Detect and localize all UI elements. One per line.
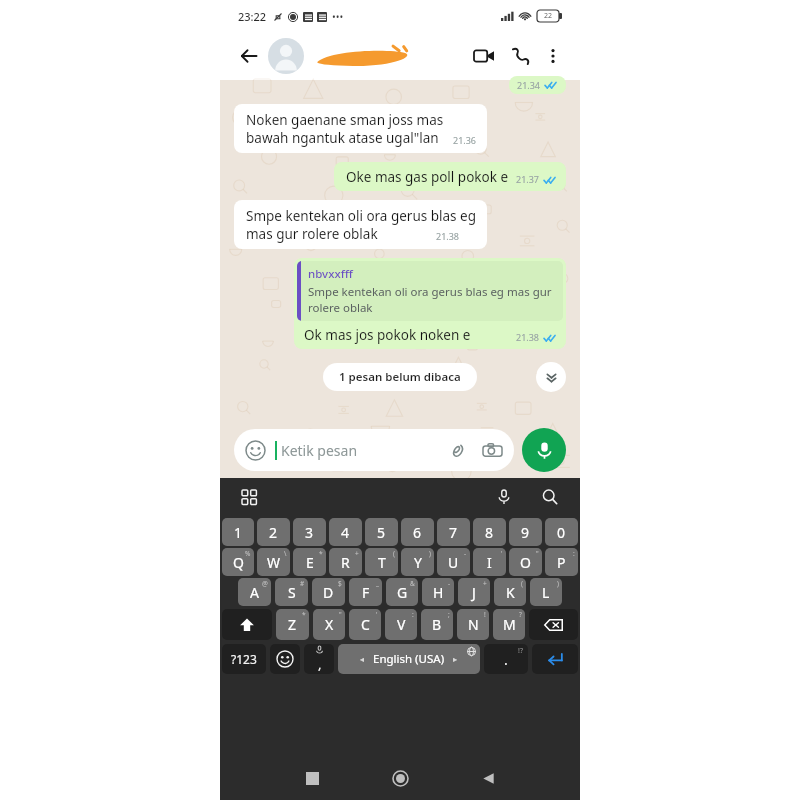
staticText: English (USA): [373, 651, 445, 667]
button[interactable]: E: [293, 548, 326, 576]
button[interactable]: N: [457, 609, 489, 640]
button[interactable]: P: [545, 548, 578, 576]
button[interactable]: V: [385, 609, 417, 640]
button[interactable]: B: [421, 609, 453, 640]
button[interactable]: Back: [466, 756, 510, 800]
staticText: @: [262, 579, 268, 588]
button[interactable]: Search: [536, 483, 564, 511]
staticText: D: [323, 583, 334, 602]
button[interactable]: C: [349, 609, 381, 640]
button[interactable]: Toolbar: [236, 484, 262, 510]
staticText: X: [325, 615, 334, 634]
staticText: (: [393, 549, 395, 558]
button[interactable]: Back: [232, 39, 266, 73]
button[interactable]: Smpe kentekan oli ora gerus blas eg: [234, 200, 487, 249]
button[interactable]: S: [275, 578, 308, 606]
button[interactable]: Emoji: [270, 644, 300, 674]
staticText: C: [361, 615, 370, 634]
button[interactable]: 0: [545, 518, 578, 546]
button[interactable]: H: [422, 578, 454, 606]
button[interactable]: T: [365, 548, 398, 576]
staticText: 21.38: [436, 230, 460, 242]
staticText: W: [267, 553, 281, 572]
button[interactable]: A: [238, 578, 271, 606]
button[interactable]: Emoji: [234, 429, 514, 471]
staticText: Smpe kentekan oli ora gerus blas eg: [246, 207, 477, 225]
staticText: ▸: [453, 655, 458, 664]
staticText: 22: [544, 11, 553, 21]
button[interactable]: Attach: [446, 439, 468, 461]
button[interactable]: ?123: [222, 644, 266, 674]
button[interactable]: 9: [509, 518, 542, 546]
button[interactable]: Oke mas gas poll pokok e: [334, 162, 566, 191]
button[interactable]: M: [493, 609, 525, 640]
button[interactable]: 3: [293, 518, 326, 546]
button[interactable]: Noken gaenane sman joss mas: [234, 104, 487, 153]
staticText: nbvxxfff: [308, 266, 353, 282]
button[interactable]: G: [386, 578, 418, 606]
staticText: bawah ngantuk atase ugal"lan: [246, 129, 439, 147]
button[interactable]: Voice input: [490, 483, 518, 511]
staticText: Y: [414, 553, 422, 572]
button[interactable]: 21.34: [509, 76, 566, 94]
button[interactable]: X: [313, 609, 345, 640]
button[interactable]: 6: [401, 518, 434, 546]
button[interactable]: .: [484, 644, 528, 674]
button[interactable]: W: [257, 548, 290, 576]
button[interactable]: Y: [401, 548, 434, 576]
staticText: S: [288, 583, 296, 602]
button[interactable]: F: [349, 578, 382, 606]
button[interactable]: More options: [538, 41, 568, 71]
staticText: ): [557, 579, 559, 588]
button[interactable]: 7: [437, 518, 470, 546]
staticText: 1: [234, 523, 243, 542]
button[interactable]: U: [437, 548, 470, 576]
button[interactable]: J: [458, 578, 490, 606]
staticText: Ok mas jos pokok noken e: [304, 326, 471, 344]
button[interactable]: K: [494, 578, 526, 606]
staticText: Noken gaenane sman joss mas: [246, 111, 444, 129]
button[interactable]: Emoji: [245, 440, 266, 461]
button[interactable]: Scroll to bottom: [536, 362, 566, 392]
button[interactable]: Recents: [290, 756, 334, 800]
button[interactable]: Z: [276, 609, 309, 640]
button[interactable]: Call: [502, 38, 538, 74]
button[interactable]: 2: [257, 518, 290, 546]
button[interactable]: R: [329, 548, 362, 576]
button[interactable]: Home: [378, 756, 422, 800]
staticText: B: [432, 615, 442, 634]
button[interactable]: L: [530, 578, 562, 606]
button[interactable]: nbvxxfff: [294, 258, 566, 349]
staticText: 3: [305, 523, 314, 542]
button[interactable]: Backspace: [529, 609, 578, 640]
button[interactable]: Video call: [466, 38, 502, 74]
button[interactable]: Q: [222, 548, 254, 576]
staticText: -: [448, 579, 451, 588]
button[interactable]: 8: [473, 518, 506, 546]
staticText: #: [300, 579, 305, 588]
staticText: *: [319, 549, 323, 558]
button[interactable]: Camera: [481, 439, 503, 461]
staticText: I: [487, 553, 492, 572]
button[interactable]: 5: [365, 518, 398, 546]
staticText: G: [397, 583, 408, 602]
staticText: N: [468, 615, 479, 634]
staticText: F: [362, 583, 370, 602]
button[interactable]: ◂: [338, 644, 480, 674]
button[interactable]: Enter: [532, 644, 578, 674]
staticText: E: [306, 553, 314, 572]
button[interactable]: D: [312, 578, 345, 606]
staticText: .: [504, 650, 508, 669]
button[interactable]: O: [509, 548, 542, 576]
button[interactable]: Shift: [222, 609, 272, 640]
button[interactable]: [268, 38, 304, 74]
button[interactable]: 1 pesan belum dibaca: [323, 363, 477, 391]
button[interactable]: 1: [222, 518, 254, 546]
staticText: Oke mas gas poll pokok e: [346, 168, 509, 186]
button[interactable]: Comma: [304, 644, 334, 674]
button[interactable]: Voice message: [522, 428, 566, 472]
staticText: ?: [519, 610, 522, 619]
button[interactable]: [314, 43, 466, 69]
button[interactable]: 4: [329, 518, 362, 546]
button[interactable]: I: [473, 548, 506, 576]
